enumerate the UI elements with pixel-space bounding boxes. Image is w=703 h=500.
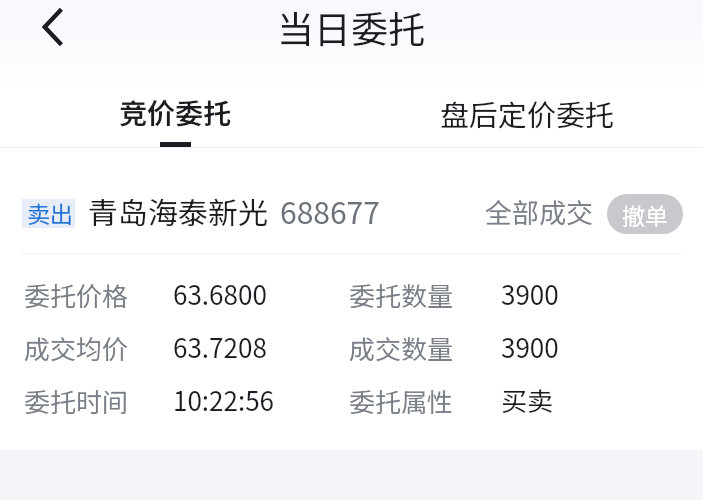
staticText: 当日委托 <box>277 0 425 54</box>
staticText: 成交均价 <box>24 329 129 367</box>
staticText: 买卖 <box>501 381 554 419</box>
staticText: 688677 <box>280 189 380 232</box>
staticText: 盘后定价委托 <box>440 92 615 134</box>
staticText: 3900 <box>501 275 559 313</box>
staticText: 3900 <box>501 328 559 366</box>
staticText: 全部成交 <box>485 192 593 231</box>
staticText: 10:22:56 <box>173 381 275 419</box>
staticText: 卖出 <box>27 196 73 229</box>
button[interactable]: 竞价委托 <box>0 80 351 147</box>
staticText: 63.7208 <box>173 328 267 366</box>
staticText: 青岛海泰新光 <box>88 189 268 232</box>
staticText: 委托数量 <box>349 276 454 314</box>
button[interactable] <box>0 170 703 425</box>
staticText: 委托价格 <box>24 276 129 314</box>
staticText: 成交数量 <box>349 329 454 367</box>
staticText: 63.6800 <box>173 275 267 313</box>
button[interactable]: 盘后定价委托 <box>352 80 703 147</box>
staticText: 撤单 <box>622 198 668 231</box>
button[interactable]: Back <box>30 3 78 51</box>
staticText: 委托时间 <box>24 382 129 420</box>
staticText: 委托属性 <box>349 382 454 420</box>
staticText: 竞价委托 <box>119 92 232 133</box>
button[interactable]: 撤单 <box>607 194 683 234</box>
